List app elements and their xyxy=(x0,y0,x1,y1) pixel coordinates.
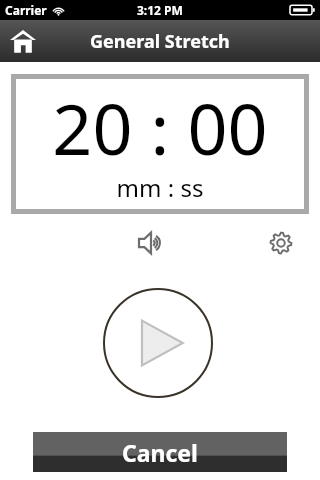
button[interactable]: Home xyxy=(6,24,40,58)
button[interactable]: Start xyxy=(102,287,214,399)
staticText: mm : ss xyxy=(16,171,304,204)
button[interactable]: Settings xyxy=(261,223,301,263)
staticText: Carrier xyxy=(5,2,47,18)
staticText: 3:12 PM xyxy=(137,2,183,18)
button[interactable]: Sound xyxy=(124,222,166,264)
button[interactable]: Cancel xyxy=(33,432,287,472)
staticText: 20 : 00 xyxy=(16,80,304,175)
staticText: General Stretch xyxy=(90,29,230,54)
staticText: Cancel xyxy=(122,437,198,468)
